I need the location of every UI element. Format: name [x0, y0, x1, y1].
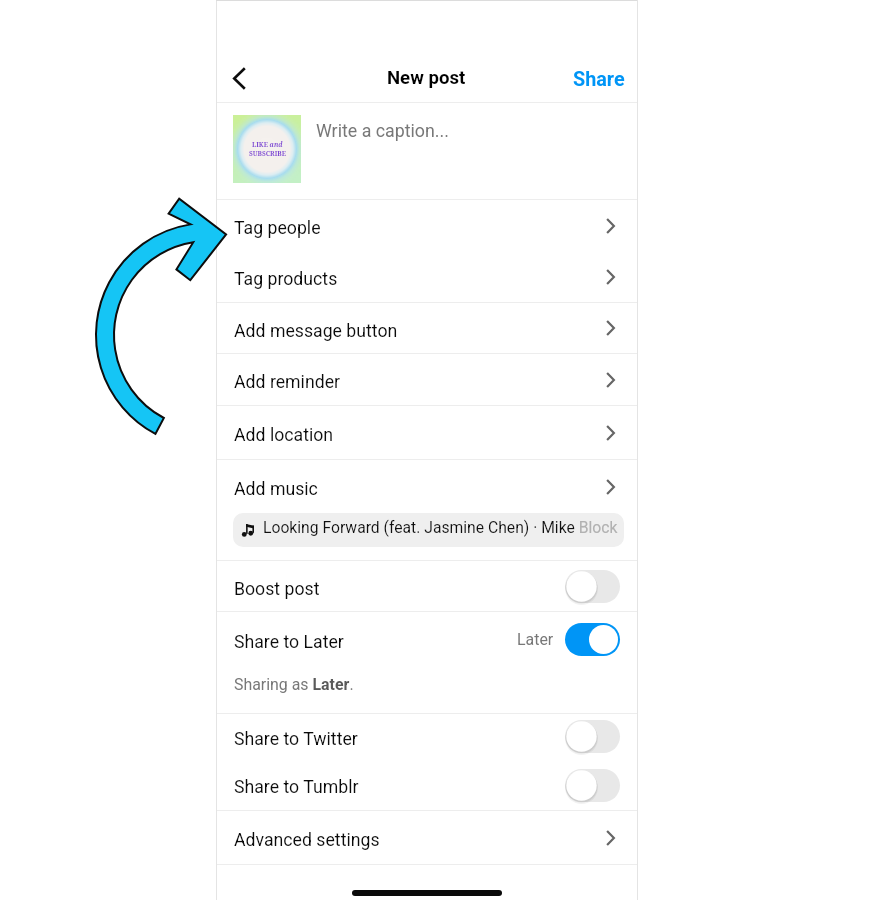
staticText: Write a caption...	[316, 120, 449, 141]
staticText: SUBSCRIBE	[249, 149, 286, 158]
button[interactable]: Add music	[216, 460, 637, 513]
button[interactable]: Share to Later	[216, 612, 637, 713]
button[interactable]: Tag products	[216, 251, 637, 302]
staticText: Share to Later	[234, 632, 344, 653]
button[interactable]: Add message button	[216, 303, 637, 353]
button[interactable]: Looking Forward (feat. Jasmine Chen) · M…	[233, 513, 624, 547]
button[interactable]: Add location	[216, 406, 637, 459]
button[interactable]: Share	[559, 56, 637, 99]
staticText: Tag people	[234, 218, 321, 239]
button[interactable]: Boost post	[216, 561, 637, 611]
staticText: Tag products	[234, 269, 338, 290]
staticText: LIKE and	[252, 140, 283, 149]
staticText: Add location	[234, 425, 334, 446]
button[interactable]: LIKE and	[216, 103, 637, 199]
staticText: Add reminder	[234, 372, 341, 393]
staticText: Advanced settings	[234, 830, 380, 851]
button[interactable]: Advanced settings	[216, 811, 637, 864]
staticText: Share to Tumblr	[234, 777, 359, 798]
staticText: Share	[573, 68, 625, 91]
button[interactable]: Add reminder	[216, 354, 637, 405]
staticText: Boost post	[234, 579, 320, 600]
staticText: Looking Forward (feat. Jasmine Chen) · M…	[263, 518, 618, 536]
staticText: Add message button	[234, 321, 398, 342]
button[interactable]: Share to Twitter	[216, 714, 637, 762]
staticText: Add music	[234, 479, 318, 500]
button[interactable]: Back	[217, 56, 261, 100]
staticText: Share to Twitter	[234, 729, 358, 750]
button[interactable]: Share to Tumblr	[216, 762, 637, 810]
button[interactable]: Tag people	[216, 200, 637, 251]
staticText: New post	[387, 67, 466, 89]
staticText: Sharing as Later.	[234, 675, 354, 694]
staticText: Later	[517, 630, 554, 649]
